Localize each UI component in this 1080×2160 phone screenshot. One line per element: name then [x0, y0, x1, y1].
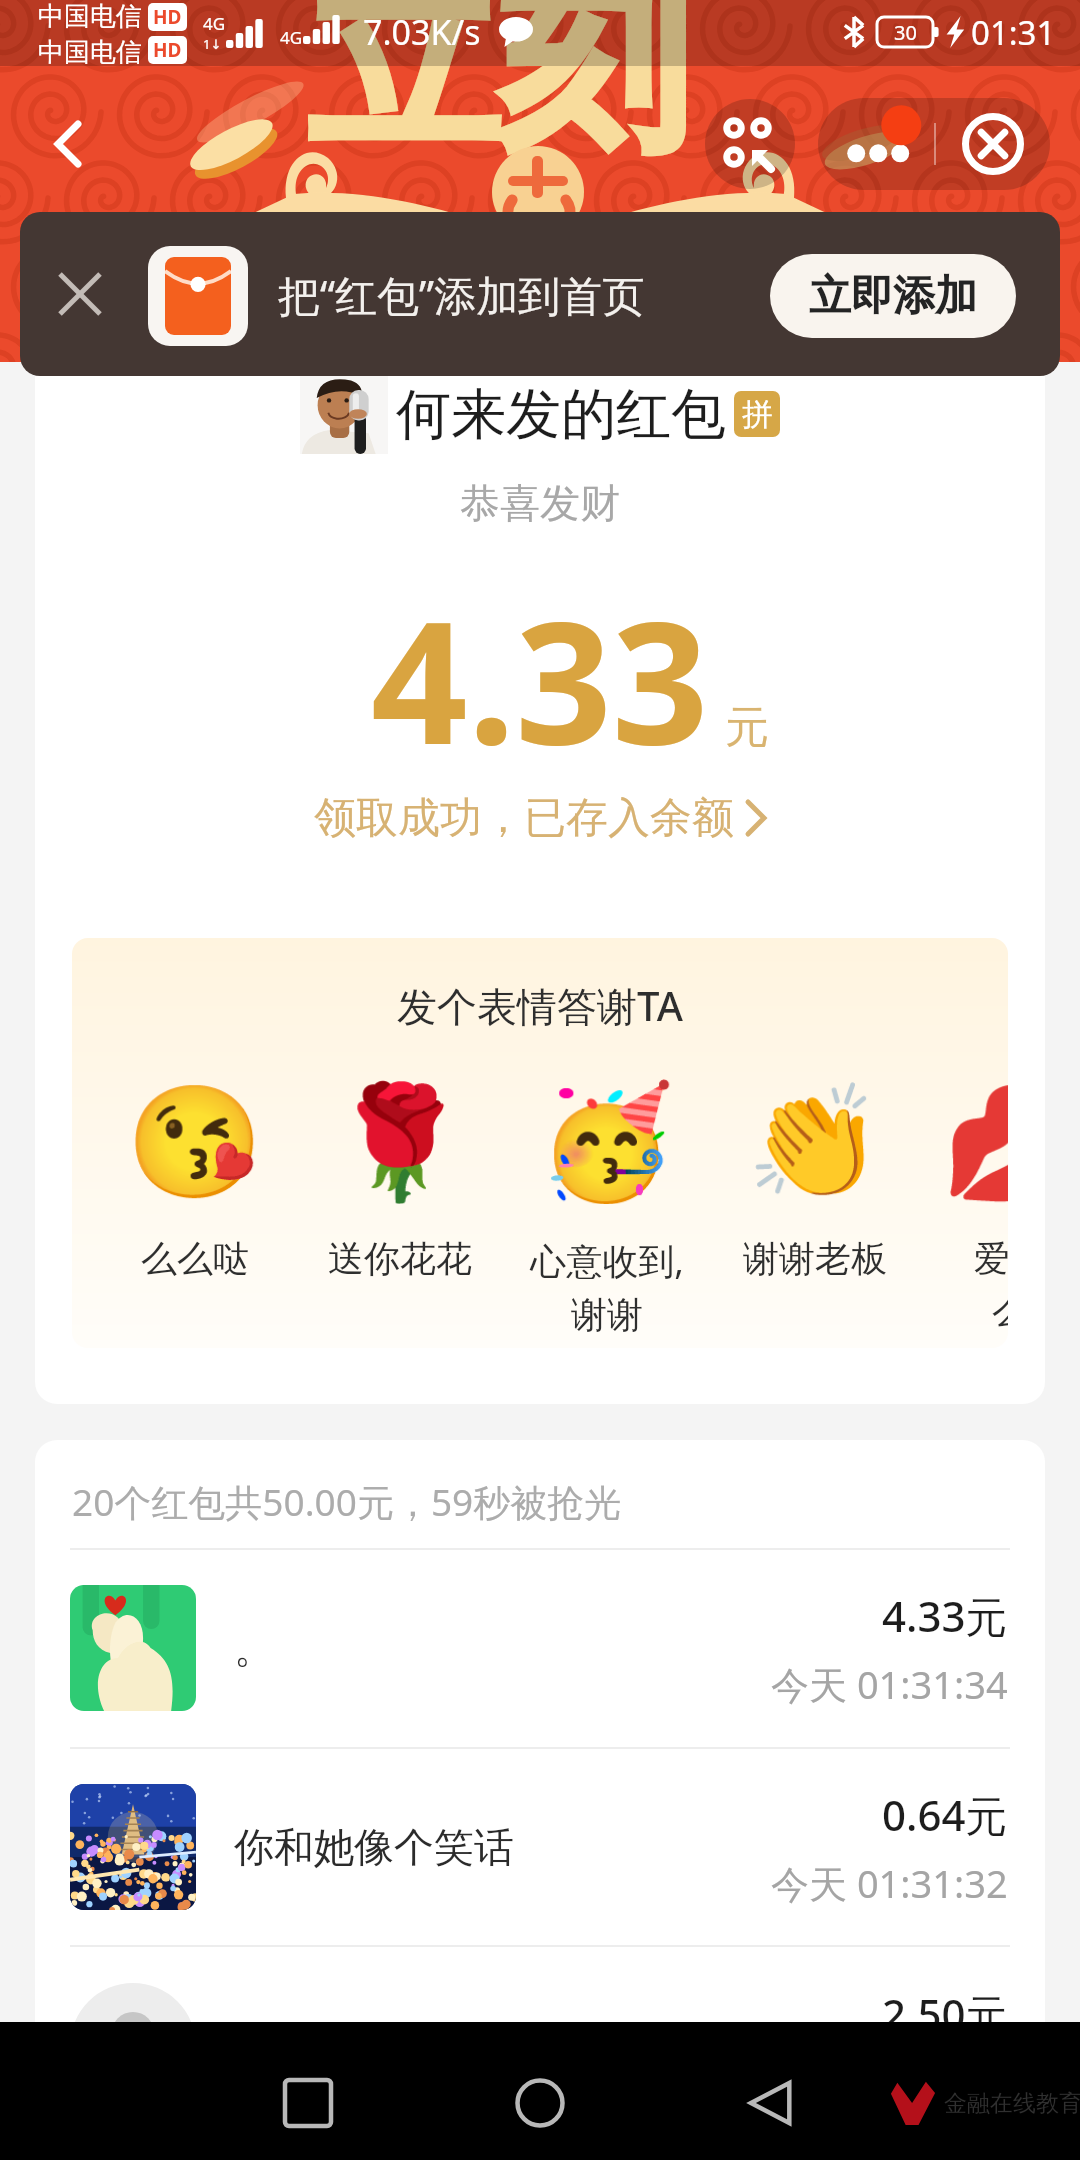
staticText: 爱你 么: [974, 1236, 1008, 1334]
staticText: 2.50元: [882, 1985, 1008, 2042]
button[interactable]: Home: [485, 2048, 595, 2158]
button[interactable]: 萌: [35, 1947, 1045, 2080]
staticText: 发个表情答谢TA: [72, 978, 1008, 1033]
button[interactable]: 🥳: [507, 1078, 707, 1338]
button[interactable]: 🌹: [300, 1078, 500, 1281]
button[interactable]: Back: [28, 104, 108, 184]
staticText: 4G: [280, 26, 303, 49]
button[interactable]: Mini program: [705, 99, 795, 189]
staticText: 立刻: [308, 0, 688, 174]
staticText: 心意收到, 谢谢: [530, 1236, 684, 1338]
staticText: 30: [894, 19, 917, 46]
staticText: 7.03K/s: [363, 9, 481, 55]
staticText: 01:31: [971, 10, 1056, 55]
staticText: 中国电信: [38, 36, 142, 64]
staticText: 你和她像个笑话: [234, 1822, 514, 1872]
staticText: 萌: [234, 2021, 274, 2071]
staticText: 4.33元: [882, 1587, 1008, 1644]
staticText: 🥳: [538, 1078, 676, 1204]
staticText: 1↓: [203, 35, 222, 53]
button[interactable]: 立即添加: [770, 254, 1016, 338]
staticText: 金融在线教育: [944, 2089, 1080, 2118]
button[interactable]: More: [818, 98, 934, 190]
staticText: 拼: [742, 395, 773, 434]
button[interactable]: 👏: [715, 1078, 915, 1281]
staticText: HD: [153, 37, 182, 63]
staticText: 送你花花: [328, 1236, 472, 1281]
staticText: 💋: [941, 1078, 1008, 1204]
staticText: 中国电信: [38, 0, 142, 33]
staticText: 。: [234, 1623, 274, 1673]
button[interactable]: 😘: [95, 1078, 295, 1281]
staticText: 0.64元: [882, 1786, 1008, 1843]
button[interactable]: 。: [35, 1549, 1045, 1747]
staticText: 4G: [203, 12, 226, 35]
button[interactable]: 领取成功，已存入余额: [35, 788, 1045, 848]
staticText: 🌹: [331, 1078, 469, 1204]
staticText: HD: [153, 4, 182, 30]
staticText: 领取成功，已存入余额: [314, 792, 734, 845]
staticText: 何来发的红包: [396, 380, 726, 449]
staticText: 4.33: [371, 563, 709, 773]
staticText: 20个红包共50.00元，59秒被抢光: [72, 1476, 622, 1527]
staticText: 今天 01:31:32: [771, 1857, 1008, 1909]
staticText: 么么哒: [141, 1236, 249, 1281]
staticText: 立即添加: [809, 270, 977, 323]
button[interactable]: Dismiss: [40, 254, 120, 334]
staticText: 恭喜发财: [35, 478, 1045, 528]
staticText: 把“红包”添加到首页: [278, 266, 645, 323]
button[interactable]: Recents: [253, 2048, 363, 2158]
staticText: 今天 01:31:34: [771, 1658, 1008, 1710]
staticText: 元: [725, 700, 769, 755]
button[interactable]: 💋: [910, 1078, 1008, 1334]
staticText: 😘: [126, 1078, 264, 1204]
button[interactable]: 你和她像个笑话: [35, 1748, 1045, 1946]
staticText: 谢谢老板: [743, 1236, 887, 1281]
staticText: 👏: [746, 1078, 884, 1204]
button[interactable]: Close: [936, 98, 1050, 190]
button[interactable]: Back: [715, 2048, 825, 2158]
